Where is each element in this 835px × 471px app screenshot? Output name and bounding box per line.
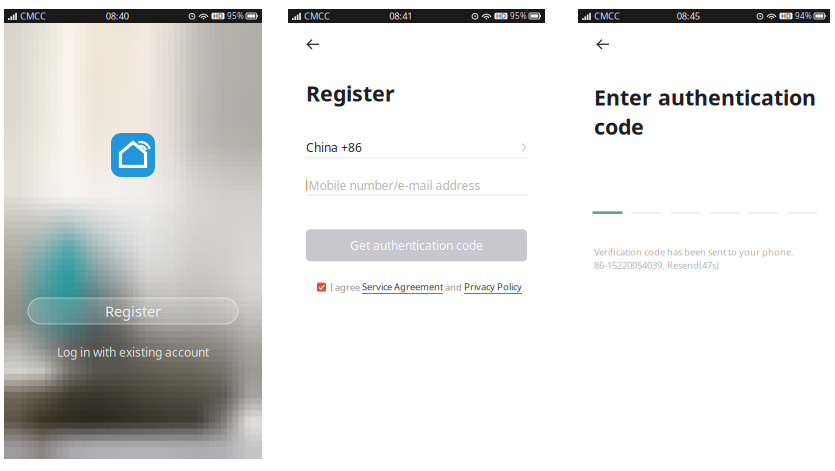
staticText: Get authentication code bbox=[350, 237, 483, 253]
staticText: China +86 bbox=[306, 139, 362, 155]
staticText: Register bbox=[105, 301, 161, 321]
staticText: Log in with existing account bbox=[57, 344, 209, 360]
staticText: and bbox=[443, 281, 464, 293]
staticText: CMCC bbox=[304, 10, 330, 22]
button[interactable]: Back bbox=[591, 34, 615, 55]
staticText: I agree bbox=[330, 281, 362, 293]
staticText: HD bbox=[213, 12, 223, 20]
staticText: CMCC bbox=[594, 10, 620, 22]
button[interactable]: Privacy Policy bbox=[464, 280, 522, 294]
staticText: 08:45 bbox=[677, 10, 700, 22]
button[interactable]: Log in with existing account bbox=[28, 344, 238, 360]
staticText: 94% bbox=[795, 11, 812, 21]
staticText: code bbox=[594, 112, 644, 141]
staticText: Verification code has been sent to your … bbox=[594, 246, 794, 258]
staticText: Service Agreement bbox=[362, 280, 443, 293]
button[interactable]: Register bbox=[28, 298, 238, 324]
button[interactable]: I agree bbox=[317, 283, 326, 292]
button[interactable]: Resend(47s) bbox=[667, 259, 719, 271]
staticText: HD bbox=[496, 12, 506, 20]
button[interactable]: Get authentication code bbox=[306, 229, 527, 261]
staticText: Privacy Policy bbox=[464, 280, 522, 293]
staticText: Resend(47s) bbox=[667, 259, 719, 271]
staticText: 08:40 bbox=[106, 10, 129, 22]
staticText: 95% bbox=[227, 11, 244, 21]
button[interactable]: Back bbox=[301, 34, 325, 55]
staticText: Enter authentication bbox=[594, 83, 816, 111]
staticText: HD bbox=[781, 12, 791, 20]
staticText: CMCC bbox=[20, 10, 46, 22]
staticText: 08:41 bbox=[389, 10, 412, 22]
button[interactable]: China +86 bbox=[288, 137, 545, 158]
staticText: Mobile number/e-mail address bbox=[308, 177, 480, 193]
staticText: 86-15220054039, bbox=[594, 259, 667, 271]
staticText: Register bbox=[306, 79, 395, 107]
staticText: 95% bbox=[510, 11, 527, 21]
button[interactable]: Service Agreement bbox=[362, 280, 443, 294]
